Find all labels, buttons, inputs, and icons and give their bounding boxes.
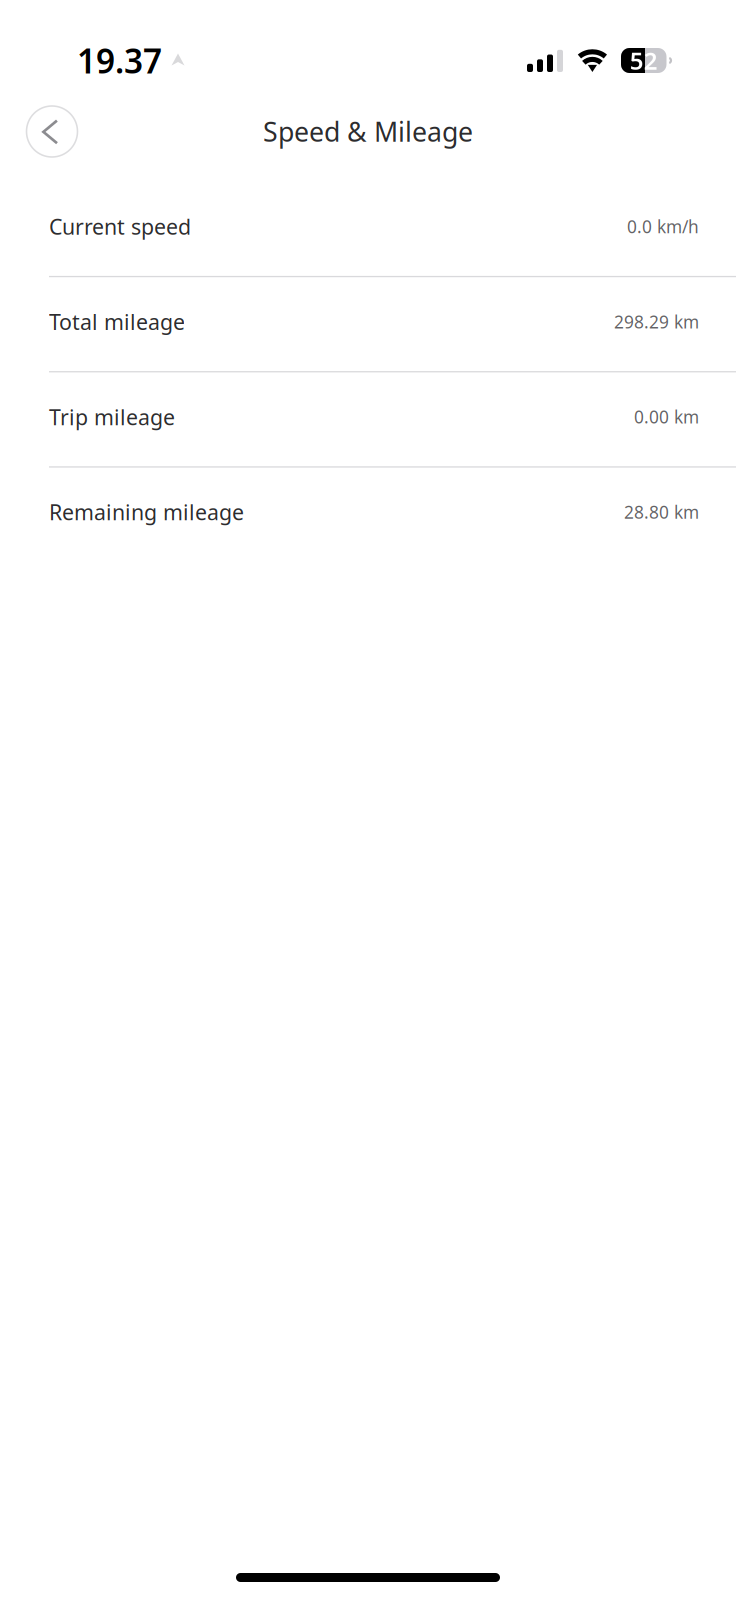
staticText: 28.80 km [624, 500, 699, 523]
button[interactable]: Current speed [0, 182, 736, 276]
staticText: Total mileage [49, 307, 185, 336]
staticText: Current speed [49, 212, 191, 241]
staticText: Trip mileage [49, 403, 175, 431]
button[interactable]: Back [26, 106, 77, 157]
staticText: Speed & Mileage [263, 114, 473, 149]
button[interactable]: Total mileage [0, 277, 736, 371]
staticText: 0.0 km/h [627, 215, 699, 238]
button[interactable]: Trip mileage [0, 372, 736, 466]
staticText: 298.29 km [614, 310, 699, 333]
staticText: 19.37 [77, 38, 162, 83]
staticText: Remaining mileage [49, 498, 244, 526]
button[interactable]: Remaining mileage [0, 468, 736, 561]
staticText: 52 [630, 45, 658, 76]
staticText: 0.00 km [634, 405, 699, 428]
